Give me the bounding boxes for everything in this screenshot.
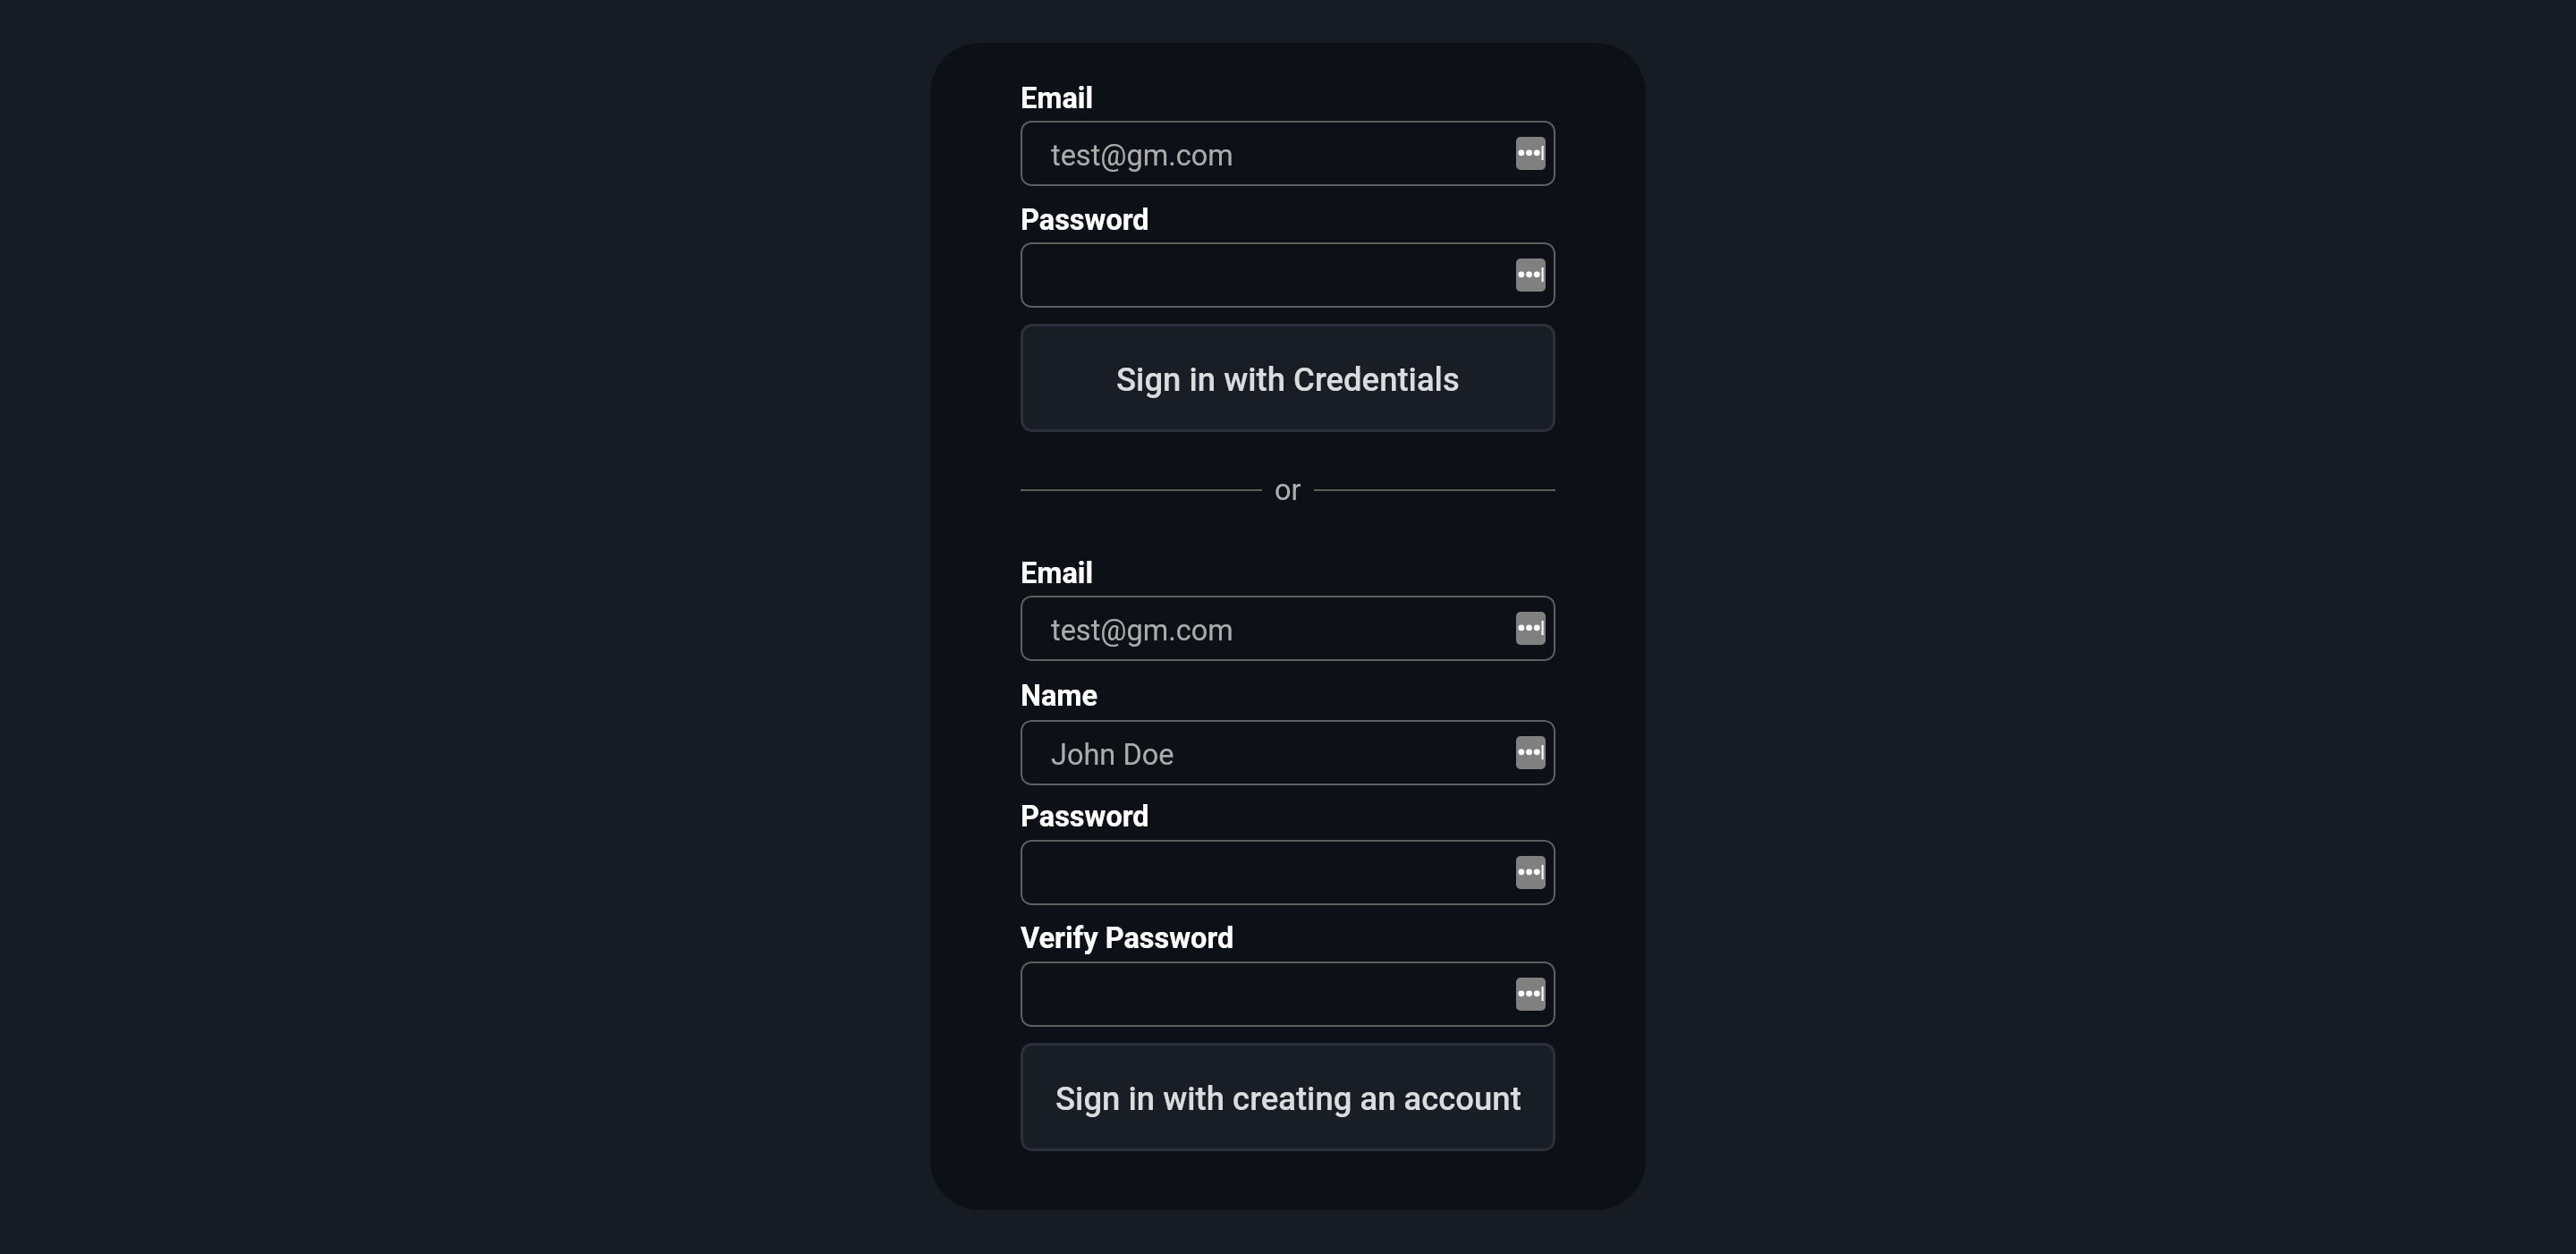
button[interactable]: Sign in with Credentials [1021,324,1555,432]
button[interactable]: Autofill Email [1516,137,1546,170]
staticText: test@gm.com [1051,139,1233,173]
staticText: Email [1021,81,1094,115]
staticText: Sign in with creating an account [1055,1080,1521,1118]
button[interactable]: Autofill Password [1516,856,1546,889]
staticText: Name [1021,679,1098,713]
button[interactable]: Autofill Email [1516,612,1546,645]
button[interactable]: Verify Password [1021,962,1555,1027]
staticText: Sign in with Credentials [1116,360,1460,399]
staticText: test@gm.com [1051,614,1233,648]
button[interactable]: Email [1021,121,1555,186]
staticText: Email [1021,556,1094,590]
button[interactable]: Password [1021,242,1555,308]
staticText: Verify Password [1021,921,1234,955]
button[interactable]: Autofill Password [1516,258,1546,292]
button[interactable]: Name [1021,720,1555,785]
button[interactable]: Email [1021,596,1555,661]
staticText: John Doe [1051,738,1174,772]
staticText: or [1275,473,1301,507]
button[interactable]: Autofill Verify Password [1516,978,1546,1011]
staticText: Password [1021,203,1149,237]
button[interactable]: Autofill Name [1516,736,1546,769]
button[interactable]: Sign in with creating an account [1021,1043,1555,1151]
button[interactable]: Password [1021,840,1555,905]
staticText: Password [1021,800,1149,834]
